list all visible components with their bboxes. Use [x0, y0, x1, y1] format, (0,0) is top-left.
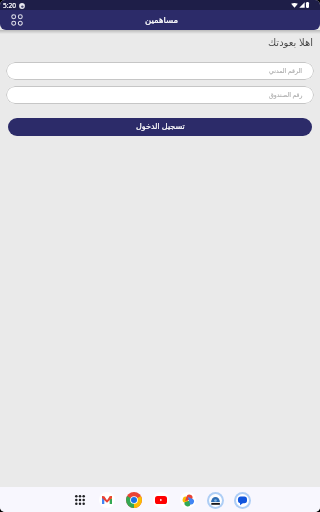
button[interactable]: تسجيل الدخول	[8, 118, 312, 136]
staticText: تسجيل الدخول	[136, 120, 185, 131]
staticText: الرقم المدني	[269, 66, 303, 74]
staticText: 5:20	[3, 1, 16, 10]
button[interactable]: رقم الصندوق	[6, 86, 314, 104]
staticText: رقم الصندوق	[269, 90, 303, 98]
button[interactable]: Photos	[179, 491, 197, 509]
staticText: مساهمين	[145, 15, 179, 25]
button[interactable]: Apps	[71, 491, 89, 509]
button[interactable]: Apps	[5, 11, 29, 29]
button[interactable]: YouTube	[152, 491, 170, 509]
staticText: اهلا بعودتك	[0, 35, 313, 49]
button[interactable]: Chrome	[125, 491, 143, 509]
button[interactable]: Gmail	[98, 491, 116, 509]
button[interactable]: Profile	[206, 491, 224, 509]
button[interactable]: Messages	[233, 491, 251, 509]
button[interactable]: الرقم المدني	[6, 62, 314, 80]
